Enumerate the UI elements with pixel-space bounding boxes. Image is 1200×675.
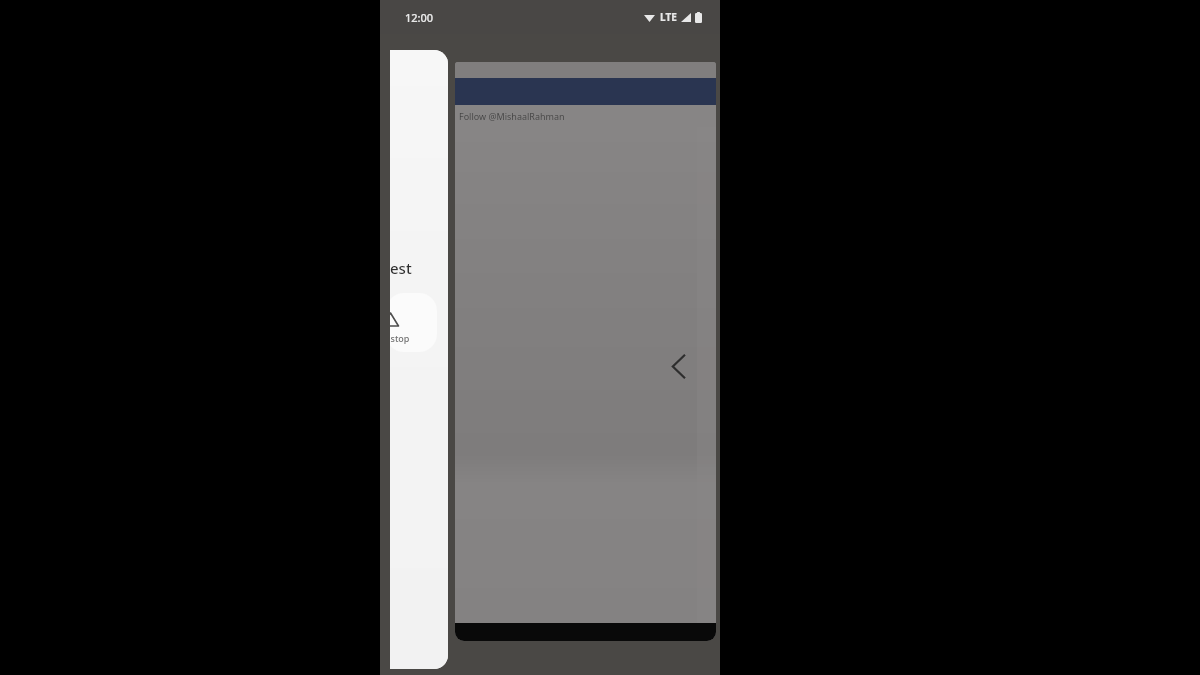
staticText: LTE: [660, 10, 677, 24]
staticText: Follow @MishaalRahman: [459, 110, 565, 122]
staticText: est: [390, 258, 412, 278]
button[interactable]: Follow @MishaalRahman: [455, 105, 716, 127]
button[interactable]: Back: [661, 349, 695, 383]
button[interactable]: e stop: [390, 293, 437, 352]
button[interactable]: est: [390, 255, 448, 281]
staticText: e stop: [390, 332, 410, 344]
staticText: 12:00: [405, 10, 434, 25]
